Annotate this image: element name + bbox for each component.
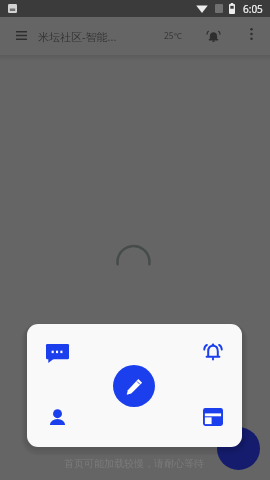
button[interactable]: Alarm [193, 331, 233, 371]
staticText: 6:05 [243, 2, 263, 16]
staticText: 米坛社区-智能... [38, 29, 117, 44]
button[interactable]: Profile [37, 397, 77, 437]
button[interactable]: Notifications [202, 25, 224, 47]
staticText: 首页可能加载较慢，请耐心等待 [64, 457, 204, 470]
button[interactable]: Compose new post [113, 365, 155, 407]
button[interactable]: Dashboard [193, 397, 233, 437]
button[interactable]: More options [241, 24, 261, 44]
button[interactable]: Open navigation menu [9, 23, 34, 48]
staticText: 25℃ [164, 30, 183, 42]
button[interactable]: Messages [37, 333, 77, 373]
